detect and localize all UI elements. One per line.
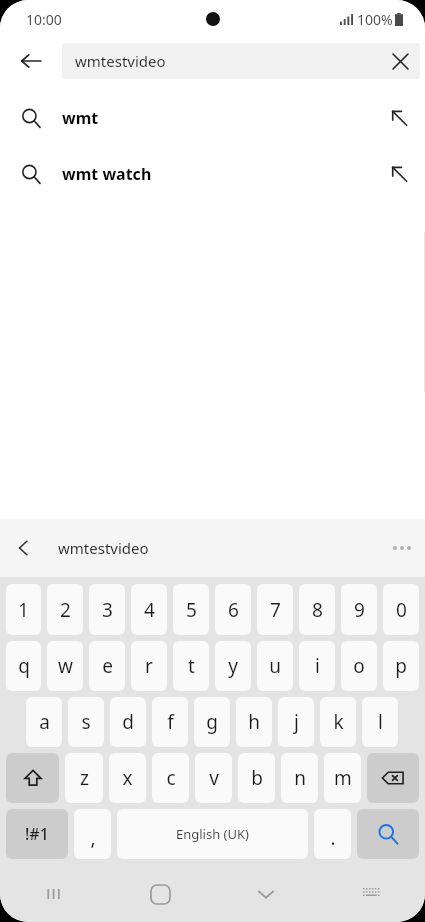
staticText: o [353,653,365,679]
button[interactable]: 2 [47,584,83,635]
staticText: 9 [354,597,365,623]
staticText: b [251,765,263,791]
staticText: wmtestvideo [58,538,379,558]
button[interactable]: !#1 [6,809,68,859]
staticText: n [294,765,306,791]
button[interactable]: g [194,697,230,747]
button[interactable]: Shift [6,753,59,803]
staticText: !#1 [25,823,49,845]
button[interactable]: i [299,641,335,691]
button[interactable]: w [47,641,83,691]
button[interactable]: Search [357,809,419,859]
button[interactable]: 8 [299,584,335,635]
button[interactable]: Insert suggestion wmt [373,90,425,146]
staticText: i [315,653,320,679]
button[interactable]: o [341,641,377,691]
button[interactable]: , [74,809,111,859]
staticText: 2 [60,597,71,623]
button[interactable]: u [257,641,293,691]
staticText: wmtestvideo [75,51,380,71]
button[interactable]: Home [107,866,213,922]
button[interactable]: 6 [215,584,251,635]
button[interactable]: Backspace [367,753,419,803]
button[interactable]: n [281,753,318,803]
staticText: d [122,709,134,735]
staticText: s [81,709,91,735]
staticText: l [378,709,383,735]
button[interactable]: 1 [6,584,41,635]
button[interactable]: p [383,641,419,691]
staticText: t [188,653,195,679]
staticText: e [102,653,113,679]
staticText: wmt [62,107,373,129]
button[interactable]: . [314,809,351,859]
button[interactable]: English (UK) [117,809,308,859]
button[interactable]: a [26,697,62,747]
button[interactable]: wmt watch [0,146,425,202]
button[interactable]: t [173,641,209,691]
button[interactable]: e [89,641,125,691]
staticText: q [18,653,30,679]
button[interactable]: s [68,697,104,747]
staticText: h [248,709,260,735]
button[interactable]: k [320,697,356,747]
staticText: 4 [144,597,155,623]
button[interactable]: h [236,697,272,747]
staticText: , [90,825,96,851]
button[interactable]: Back [0,38,62,84]
button[interactable]: wmt [0,90,425,146]
staticText: f [167,709,174,735]
staticText: p [395,653,407,679]
button[interactable]: 9 [341,584,377,635]
button[interactable]: r [131,641,167,691]
staticText: z [80,765,89,791]
button[interactable]: Clear [380,43,420,79]
staticText: 10:00 [26,10,62,29]
staticText: 100% [357,10,393,29]
staticText: 0 [396,597,407,623]
button[interactable]: m [324,753,361,803]
staticText: 1 [18,597,29,623]
staticText: 6 [228,597,239,623]
button[interactable]: More options [379,519,425,577]
button[interactable]: c [152,753,189,803]
button[interactable]: z [65,753,103,803]
staticText: wmt watch [62,163,373,185]
button[interactable]: l [362,697,398,747]
button[interactable]: Keyboard layout [319,866,425,922]
staticText: 8 [312,597,323,623]
staticText: x [122,765,133,791]
button[interactable]: 4 [131,584,167,635]
staticText: m [334,765,352,791]
button[interactable]: 5 [173,584,209,635]
staticText: j [294,709,299,735]
button[interactable]: f [152,697,188,747]
staticText: 3 [102,597,113,623]
button[interactable]: q [6,641,41,691]
staticText: . [330,825,336,851]
button[interactable]: Previous [0,519,48,577]
button[interactable]: Recents [0,866,107,922]
button[interactable]: j [278,697,314,747]
button[interactable]: 7 [257,584,293,635]
staticText: g [206,709,218,735]
button[interactable]: b [238,753,275,803]
button[interactable]: d [110,697,146,747]
button[interactable]: v [195,753,232,803]
button[interactable]: Insert suggestion wmt watch [373,146,425,202]
staticText: u [269,653,281,679]
button[interactable]: wmtestvideo [62,43,420,79]
staticText: y [228,653,238,679]
staticText: k [333,709,344,735]
button[interactable]: x [109,753,146,803]
staticText: r [145,653,153,679]
staticText: w [58,653,73,679]
button[interactable]: y [215,641,251,691]
button[interactable]: Hide keyboard [213,866,319,922]
button[interactable]: 3 [89,584,125,635]
button[interactable]: 0 [383,584,419,635]
staticText: a [39,709,50,735]
staticText: v [209,765,219,791]
staticText: English (UK) [176,825,249,843]
staticText: 7 [270,597,281,623]
